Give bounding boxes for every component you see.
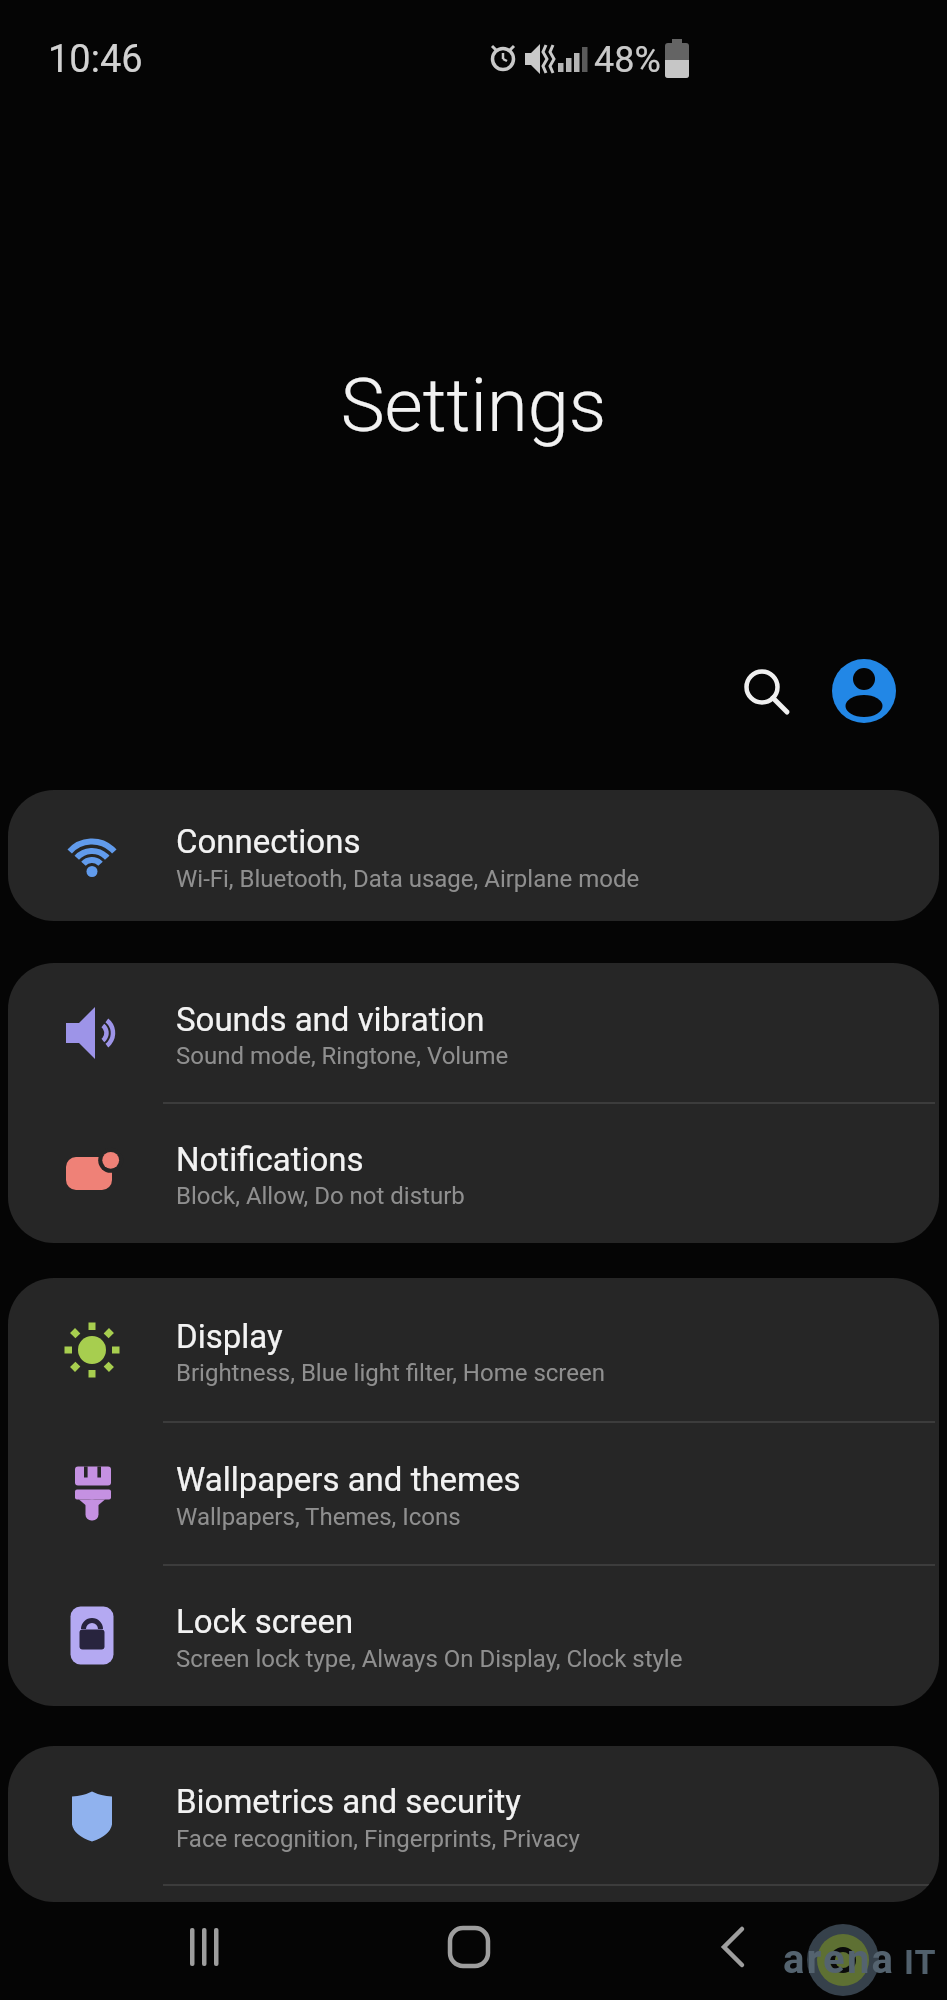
button[interactable] xyxy=(429,1907,509,1987)
staticText: 48% xyxy=(594,39,661,81)
staticText: IT xyxy=(904,1942,937,1982)
staticText: Sound mode, Ringtone, Volume xyxy=(176,1042,509,1070)
button[interactable] xyxy=(165,1907,245,1987)
button[interactable]: Display xyxy=(8,1278,939,1422)
staticText: Sounds and vibration xyxy=(176,1000,485,1039)
button[interactable]: Sounds and vibration xyxy=(8,963,939,1103)
button[interactable]: Wallpapers and themes xyxy=(8,1422,939,1565)
staticText: Connections xyxy=(176,822,361,861)
staticText: Wi-Fi, Bluetooth, Data usage, Airplane m… xyxy=(176,865,640,893)
staticText: Block, Allow, Do not disturb xyxy=(176,1182,465,1210)
staticText: Lock screen xyxy=(176,1602,354,1641)
staticText: 10:46 xyxy=(48,37,143,82)
button[interactable]: Connections xyxy=(8,790,939,921)
staticText: Wallpapers, Themes, Icons xyxy=(176,1503,461,1531)
button[interactable]: Biometrics and security xyxy=(8,1746,939,1885)
staticText: Biometrics and security xyxy=(176,1782,521,1821)
staticText: Face recognition, Fingerprints, Privacy xyxy=(176,1825,580,1853)
staticText: arena xyxy=(783,1936,896,1983)
button[interactable]: Lock screen xyxy=(8,1565,939,1706)
staticText: Notifications xyxy=(176,1140,364,1179)
staticText: Wallpapers and themes xyxy=(176,1460,521,1499)
button[interactable]: Notifications xyxy=(8,1103,939,1243)
staticText: Screen lock type, Always On Display, Clo… xyxy=(176,1645,683,1673)
button[interactable] xyxy=(693,1907,773,1987)
button[interactable] xyxy=(832,659,896,723)
button[interactable] xyxy=(736,661,792,717)
staticText: Settings xyxy=(0,362,947,449)
staticText: Display xyxy=(176,1317,283,1356)
staticText: Brightness, Blue light filter, Home scre… xyxy=(176,1359,605,1387)
